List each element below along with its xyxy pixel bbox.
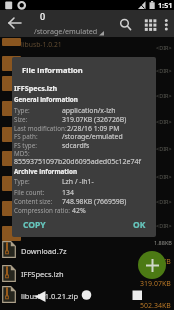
staticText: OK <box>133 219 146 231</box>
staticText: FS path: <box>14 132 38 141</box>
staticText: 319.07KB (326726B) <box>62 115 127 124</box>
staticText: libusb-1.0.21 <box>21 40 62 49</box>
staticText: File count: <box>14 188 45 197</box>
staticText: <DIR> <box>156 118 172 125</box>
staticText: <DIR> <box>156 173 172 180</box>
staticText: <DIR> <box>156 67 172 74</box>
staticText: 230.50KB <box>140 257 171 267</box>
button[interactable]: COPY <box>13 217 55 233</box>
staticText: <DIR> <box>156 222 172 229</box>
staticText: COPY <box>23 219 46 231</box>
staticText: <DIR> <box>156 145 172 152</box>
staticText: Type: <box>14 177 30 186</box>
staticText: FS type: <box>14 141 37 150</box>
button[interactable] <box>159 16 174 33</box>
staticText: 502.34KB <box>140 301 171 310</box>
button[interactable] <box>75 289 99 304</box>
button[interactable]: OK <box>126 217 152 233</box>
button[interactable] <box>0 263 174 286</box>
staticText: 85593751097b20d6095aded05c12e74f <box>14 157 141 167</box>
staticText: 748.98KB (766959B) <box>62 197 127 206</box>
button[interactable] <box>6 15 24 31</box>
staticText: 134 <box>62 188 74 197</box>
staticText: Content size: <box>14 197 53 206</box>
staticText: Size: <box>14 115 28 124</box>
staticText: IFFSpecs.lzh <box>14 83 58 93</box>
staticText: 0 <box>40 10 46 22</box>
staticText: Compression ratio: <box>14 206 70 215</box>
button[interactable] <box>117 16 134 33</box>
staticText: Download.7z <box>21 246 67 256</box>
staticText: IFFSpecs.lzh <box>21 269 64 279</box>
staticText: Lzh / -lh1- <box>62 177 94 186</box>
staticText: 2/28/16 1:09 PM <box>67 124 120 133</box>
button[interactable] <box>142 16 160 33</box>
staticText: MD5: <box>14 149 30 158</box>
staticText: libusb-1.0.21.zip <box>21 291 78 301</box>
button[interactable] <box>0 36 174 50</box>
staticText: File information <box>22 65 83 75</box>
staticText: Type: <box>14 106 30 115</box>
button[interactable] <box>138 251 166 279</box>
staticText: Archive information <box>14 167 77 176</box>
staticText: /storage/emulated <box>62 132 123 141</box>
staticText: General information <box>14 95 78 104</box>
staticText: <DIR> <box>156 44 172 51</box>
button[interactable] <box>0 240 174 263</box>
staticText: 319.07KB <box>140 279 171 289</box>
staticText: 42% <box>72 206 86 215</box>
staticText: 1.88KB <box>154 239 172 246</box>
staticText: Last modification: <box>14 124 67 133</box>
staticText: application/x-lzh <box>62 106 116 115</box>
button[interactable] <box>28 289 52 304</box>
staticText: 1:51 <box>158 0 173 10</box>
button[interactable] <box>0 286 174 309</box>
staticText: <DIR> <box>156 92 172 99</box>
staticText: <DIR> <box>156 198 172 205</box>
button[interactable] <box>125 289 149 304</box>
staticText: sdcardfs <box>62 141 90 150</box>
staticText: /storage/emulated <box>34 26 98 36</box>
